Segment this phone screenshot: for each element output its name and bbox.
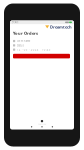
staticText: Your Orders — [13, 31, 38, 36]
staticText: 9:41 — [12, 20, 19, 24]
staticText: Status — [17, 44, 24, 47]
staticText: Item name — [17, 39, 31, 43]
staticText: 12 · 03 · 2024 10:45 — [17, 48, 51, 51]
staticText: Dreamtech — [50, 24, 72, 29]
staticText: Powered by — [37, 123, 46, 125]
